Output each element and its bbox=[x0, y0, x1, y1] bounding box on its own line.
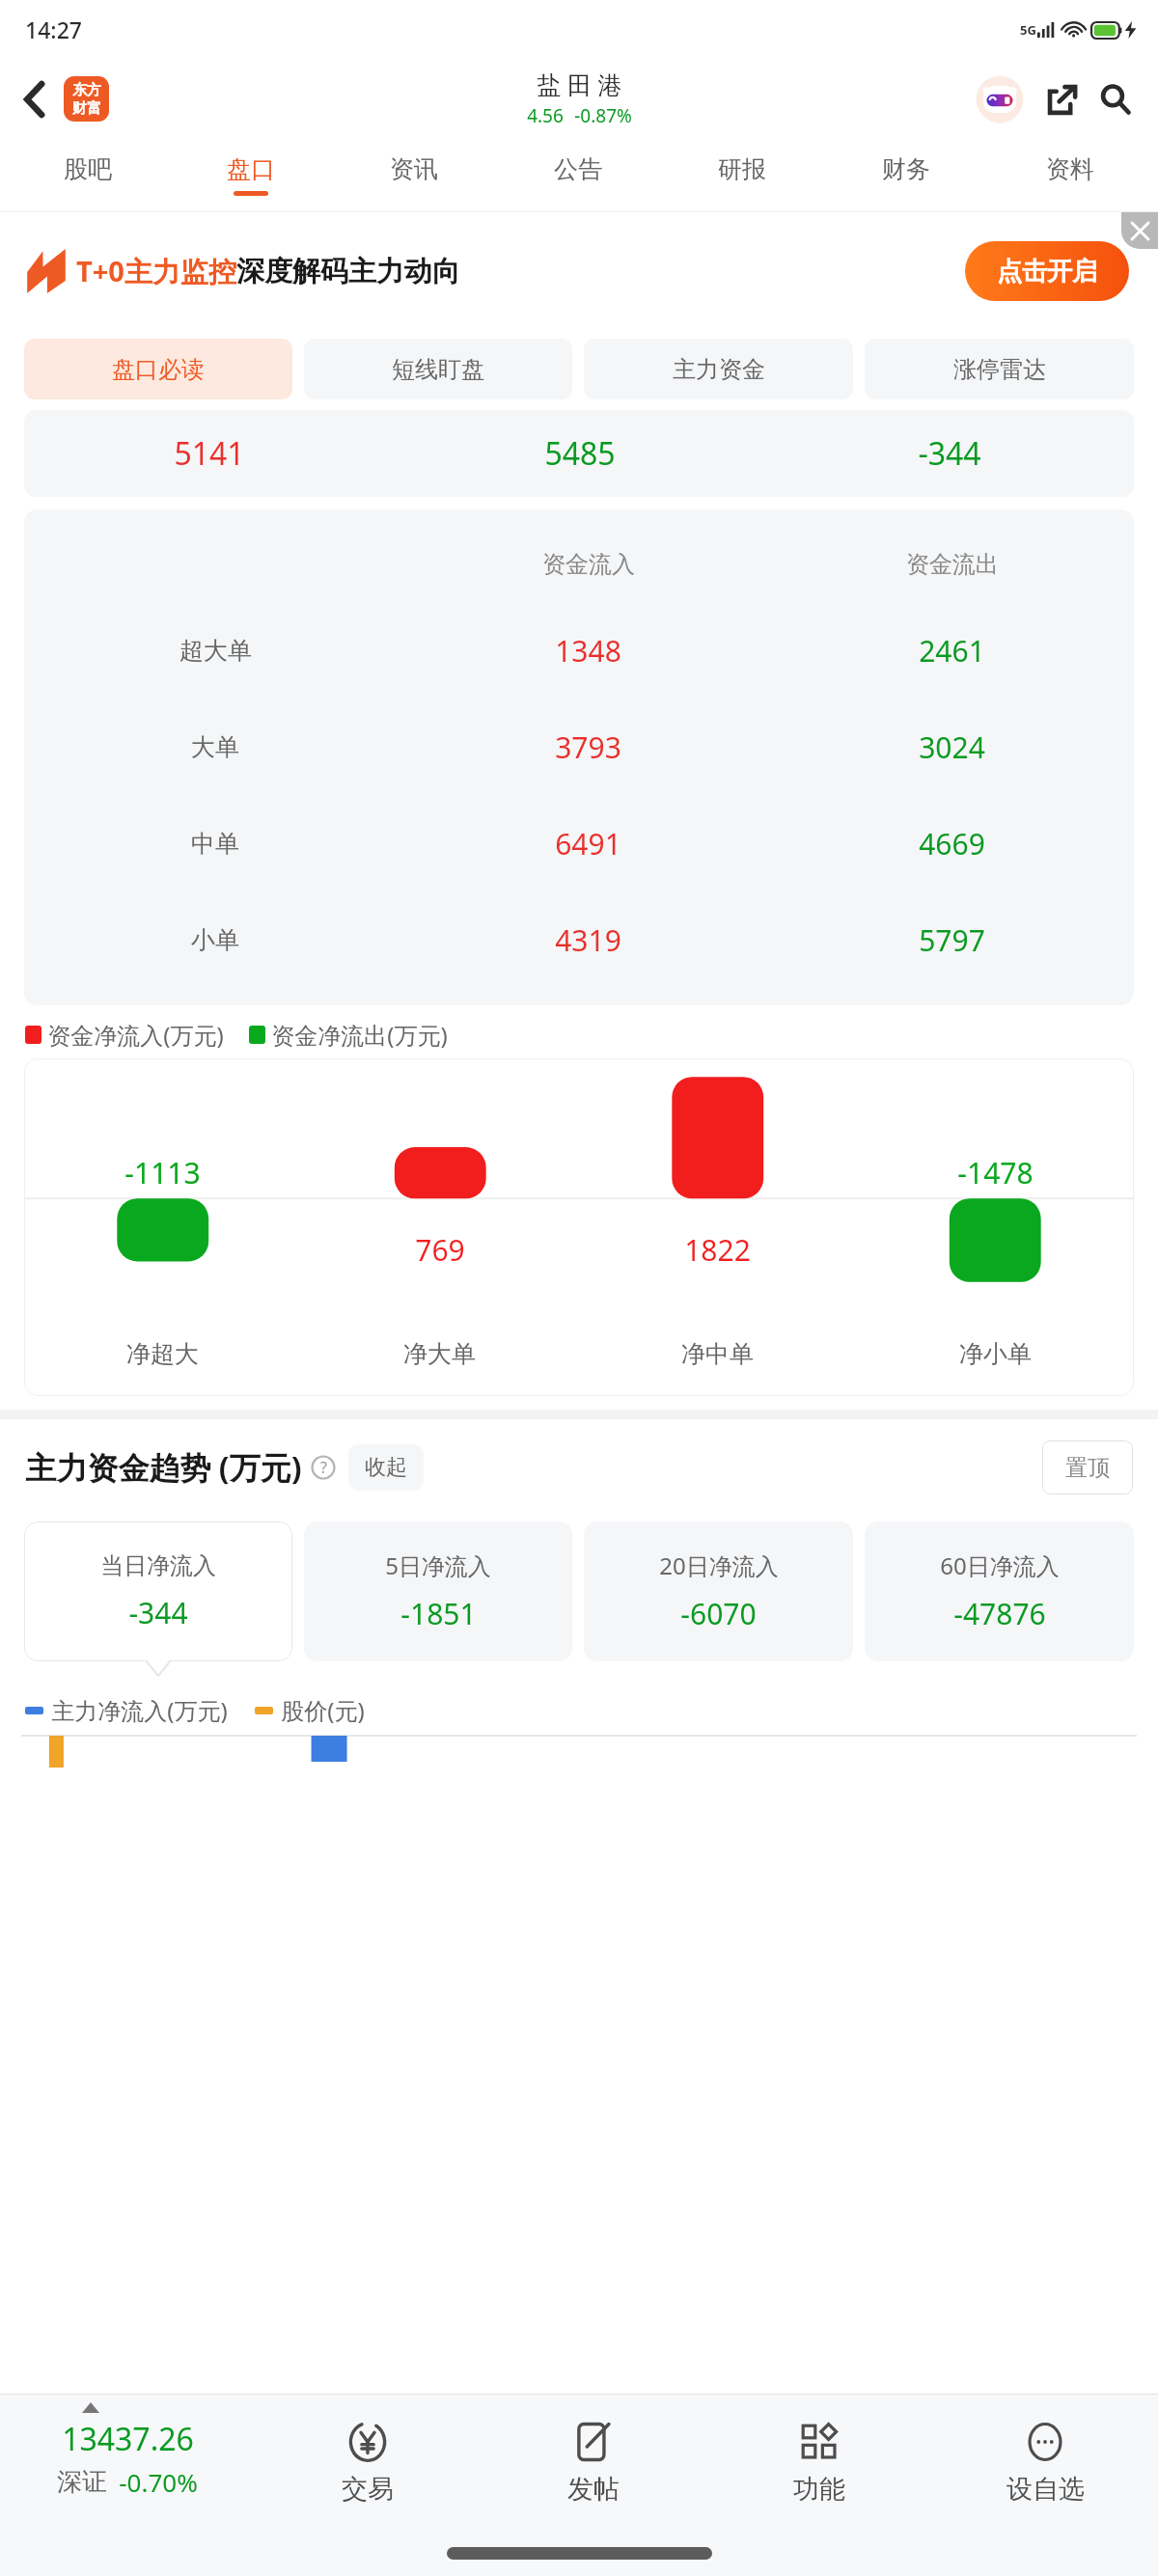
staticText: 4319 bbox=[555, 920, 621, 960]
button[interactable]: 财务 bbox=[824, 139, 988, 211]
staticText: 净小单 bbox=[959, 1339, 1032, 1369]
staticText: 净中单 bbox=[681, 1339, 754, 1369]
button[interactable]: 研报 bbox=[660, 139, 824, 211]
staticText: -344 bbox=[918, 432, 981, 475]
button[interactable]: 资讯 bbox=[332, 139, 496, 211]
button[interactable]: 5141 bbox=[24, 410, 1134, 497]
staticText: 点击开启 bbox=[997, 256, 1097, 288]
button[interactable]: 置顶 bbox=[1042, 1440, 1133, 1494]
staticText: 5G bbox=[1020, 21, 1036, 39]
staticText: 公告 bbox=[554, 154, 602, 184]
staticText: 股吧 bbox=[64, 154, 112, 184]
staticText: ? bbox=[320, 1457, 327, 1478]
button[interactable]: -1113 bbox=[24, 1058, 1134, 1396]
staticText: -1478 bbox=[957, 1153, 1034, 1192]
staticText: 60日净流入 bbox=[940, 1549, 1060, 1581]
button[interactable]: 资料 bbox=[988, 139, 1152, 211]
staticText: 盐 田 港 bbox=[537, 68, 622, 100]
staticText: 主力资金 bbox=[673, 355, 765, 384]
button[interactable]: 当日净流入 bbox=[24, 1521, 292, 1661]
staticText: 设自选 bbox=[1006, 2473, 1085, 2506]
staticText: 净大单 bbox=[403, 1339, 476, 1369]
staticText: 大单 bbox=[191, 732, 239, 762]
staticText: -1851 bbox=[400, 1594, 477, 1633]
staticText: 功能 bbox=[793, 2473, 845, 2506]
button[interactable]: Help bbox=[310, 1454, 337, 1481]
button[interactable]: 功能 bbox=[706, 2395, 932, 2530]
staticText: 主力净流入(万元) bbox=[51, 1694, 228, 1726]
staticText: 涨停雷达 bbox=[953, 355, 1046, 384]
staticText: 14:27 bbox=[25, 14, 82, 44]
button[interactable]: Close ad bbox=[1121, 212, 1158, 249]
staticText: 超大单 bbox=[179, 636, 252, 666]
button[interactable]: 股吧 bbox=[6, 139, 169, 211]
staticText: 东方 bbox=[72, 81, 101, 99]
button[interactable]: 东方财富 bbox=[64, 76, 109, 122]
staticText: 中单 bbox=[191, 829, 239, 859]
staticText: 财富 bbox=[72, 99, 101, 118]
staticText: -6070 bbox=[680, 1594, 757, 1633]
button[interactable]: Back bbox=[12, 76, 58, 123]
staticText: 20日净流入 bbox=[659, 1549, 779, 1581]
staticText: -47876 bbox=[953, 1594, 1046, 1633]
button[interactable]: 涨停雷达 bbox=[865, 339, 1134, 399]
staticText: 资金流出 bbox=[906, 550, 999, 579]
button[interactable]: 资金流入 bbox=[24, 509, 1134, 1005]
button[interactable]: 短线盯盘 bbox=[304, 339, 572, 399]
button[interactable]: 60日净流入 bbox=[865, 1521, 1134, 1661]
staticText: 6491 bbox=[555, 824, 621, 863]
staticText: 盘口 bbox=[227, 154, 275, 184]
staticText: 5141 bbox=[174, 432, 245, 475]
staticText: 股价(元) bbox=[281, 1694, 365, 1726]
button[interactable]: 盘口必读 bbox=[24, 339, 292, 399]
staticText: 净超大 bbox=[126, 1339, 199, 1369]
staticText: T+0主力监控 bbox=[76, 252, 236, 290]
staticText: 1348 bbox=[555, 631, 621, 671]
button[interactable]: T+0主力监控 bbox=[0, 212, 1158, 330]
button[interactable]: 20日净流入 bbox=[584, 1521, 853, 1661]
button[interactable]: Share bbox=[1036, 74, 1087, 124]
staticText: 财务 bbox=[882, 154, 930, 184]
staticText: 主力资金趋势 (万元) bbox=[25, 1446, 302, 1489]
button[interactable]: 5日净流入 bbox=[304, 1521, 572, 1661]
staticText: 资金净流出(万元) bbox=[271, 1019, 448, 1051]
staticText: 769 bbox=[415, 1230, 465, 1270]
button[interactable]: 发帖 bbox=[481, 2395, 706, 2530]
button[interactable]: 点击开启 bbox=[965, 241, 1129, 301]
button[interactable]: 盘口 bbox=[169, 139, 332, 211]
staticText: 3793 bbox=[555, 727, 621, 767]
button[interactable]: 设自选 bbox=[932, 2395, 1158, 2530]
staticText: 资金净流入(万元) bbox=[47, 1019, 224, 1051]
staticText: 资讯 bbox=[390, 154, 438, 184]
staticText: 2461 bbox=[919, 631, 985, 671]
button[interactable]: 收起 bbox=[348, 1444, 424, 1491]
staticText: 当日净流入 bbox=[100, 1551, 216, 1580]
staticText: -344 bbox=[128, 1593, 188, 1632]
staticText: 交易 bbox=[342, 2473, 394, 2506]
staticText: 置顶 bbox=[1065, 1454, 1110, 1482]
staticText: 短线盯盘 bbox=[392, 355, 484, 384]
staticText: 4.56 bbox=[527, 103, 564, 128]
staticText: 收起 bbox=[365, 1454, 407, 1481]
staticText: 13437.26 bbox=[62, 2418, 194, 2460]
staticText: 5日净流入 bbox=[385, 1549, 491, 1581]
button[interactable]: 主力资金 bbox=[584, 339, 853, 399]
staticText: 深度解码主力动向 bbox=[236, 254, 460, 289]
staticText: 发帖 bbox=[567, 2473, 620, 2506]
staticText: 研报 bbox=[718, 154, 766, 184]
staticText: 5797 bbox=[919, 920, 985, 960]
staticText: 资金流入 bbox=[542, 550, 635, 579]
staticText: 小单 bbox=[191, 925, 239, 955]
staticText: 5485 bbox=[544, 432, 616, 475]
staticText: 深证 bbox=[57, 2466, 107, 2498]
button[interactable]: Search bbox=[1090, 74, 1141, 124]
staticText: -0.87% bbox=[574, 103, 632, 128]
button[interactable]: 13437.26 bbox=[0, 2395, 255, 2530]
button[interactable]: 交易 bbox=[255, 2395, 481, 2530]
staticText: -0.70% bbox=[119, 2465, 198, 2499]
button[interactable]: AI assistant bbox=[973, 72, 1027, 126]
button[interactable]: 公告 bbox=[496, 139, 660, 211]
staticText: 4669 bbox=[919, 824, 985, 863]
staticText: -1113 bbox=[124, 1153, 201, 1192]
staticText: 1822 bbox=[684, 1230, 751, 1270]
